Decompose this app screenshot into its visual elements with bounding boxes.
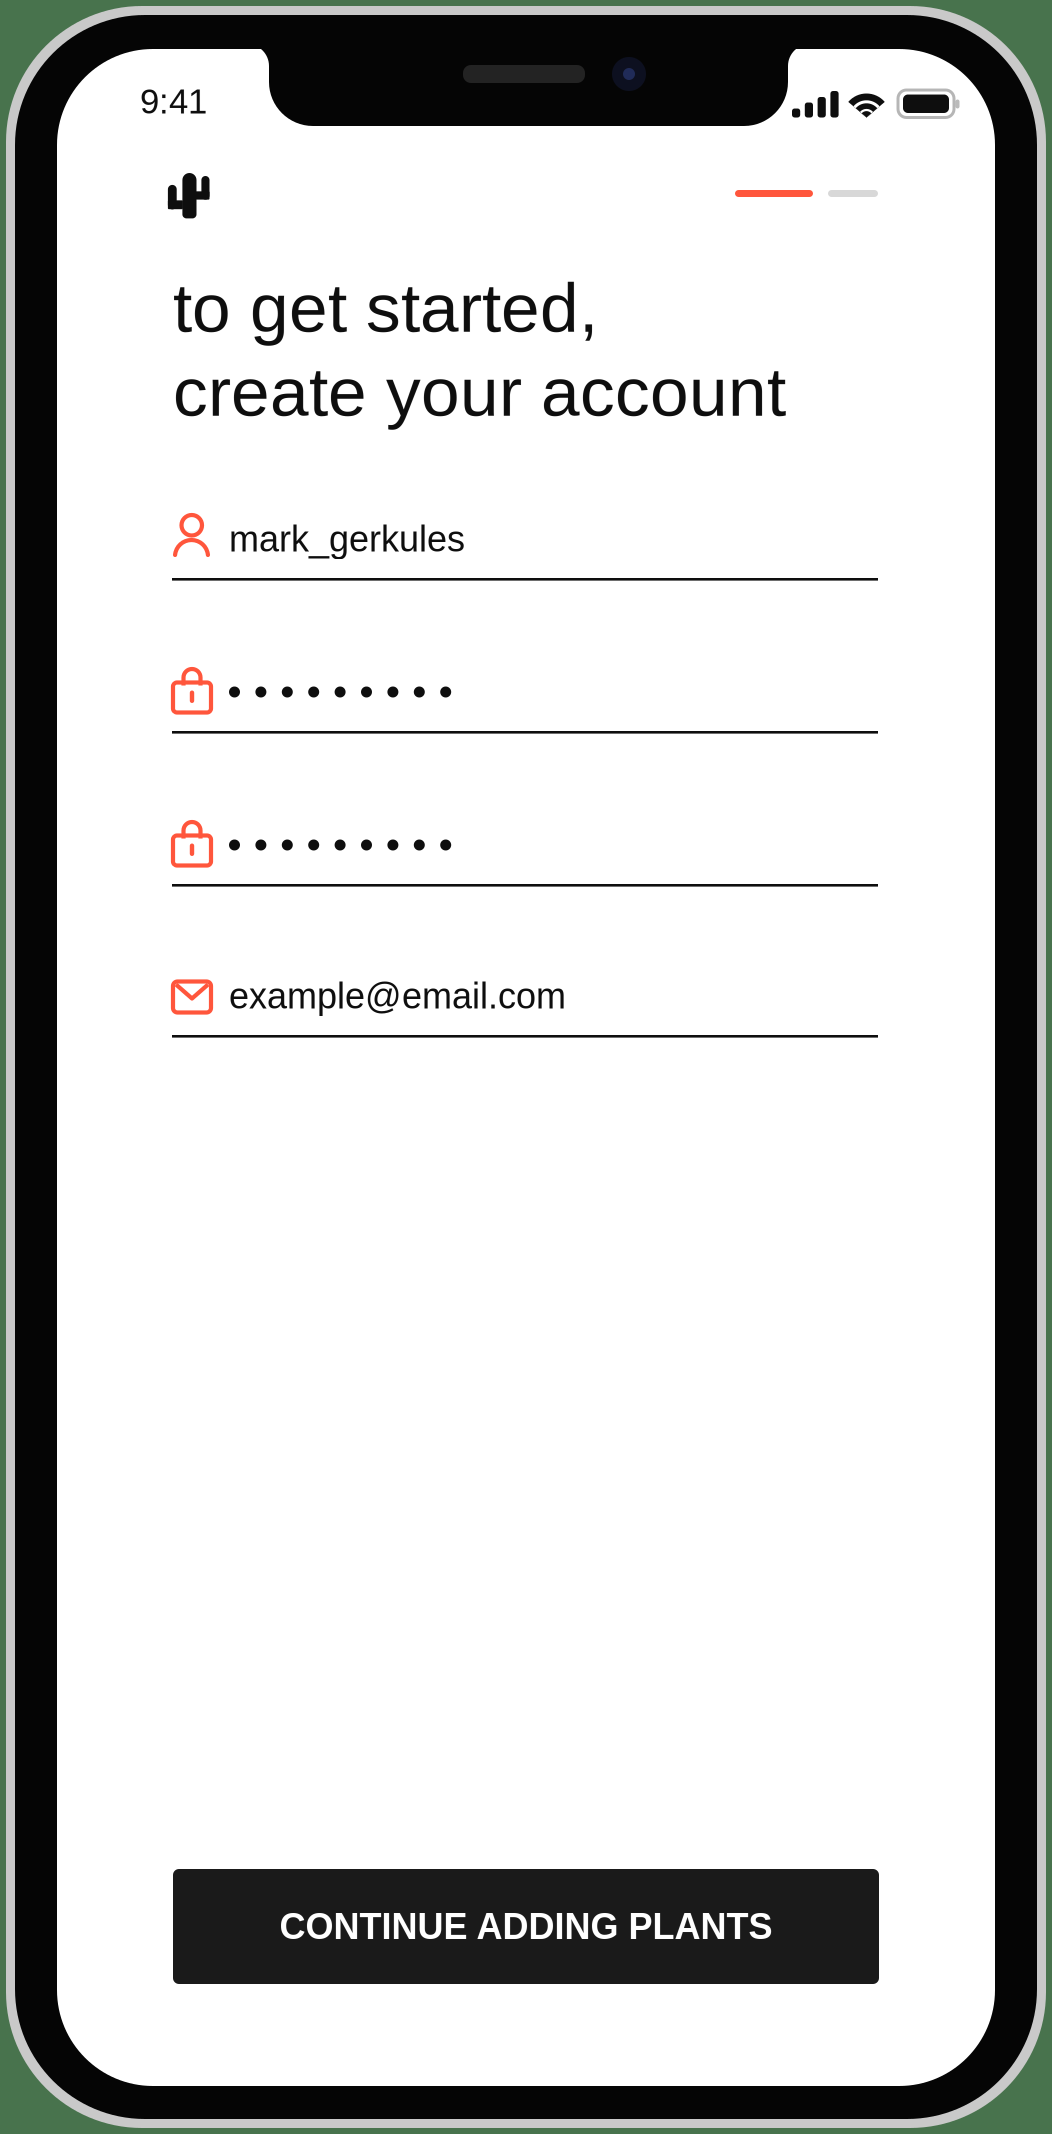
button[interactable]: Cactus home — [166, 173, 210, 219]
button[interactable]: CONTINUE ADDING PLANTS — [173, 1869, 879, 1984]
staticText: create your account — [173, 353, 786, 430]
button[interactable] — [172, 668, 878, 734]
staticText: to get started, — [173, 269, 598, 346]
staticText: 9:41 — [140, 82, 207, 121]
staticText: example@email.com — [229, 976, 566, 1016]
staticText: CONTINUE ADDING PLANTS — [279, 1906, 772, 1947]
button[interactable] — [172, 821, 878, 887]
button[interactable]: mark_gerkules — [172, 515, 878, 581]
button[interactable]: example@email.com — [172, 972, 878, 1038]
staticText: mark_gerkules — [229, 519, 465, 559]
